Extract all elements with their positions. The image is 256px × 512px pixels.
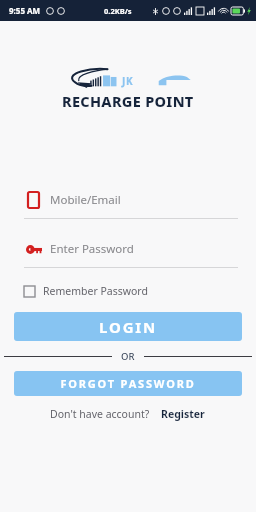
staticText: LOGIN <box>99 317 157 337</box>
staticText: 9:55 AM <box>9 5 41 16</box>
staticText: Remember Password <box>43 284 148 298</box>
staticText: Mobile/Email <box>50 192 121 208</box>
staticText: Enter Password <box>50 241 134 257</box>
button[interactable]: Remember Password <box>0 280 256 302</box>
button[interactable]: Register <box>159 405 207 423</box>
button[interactable]: Mobile/Email <box>0 189 256 219</box>
button[interactable]: Enter Password <box>0 238 256 268</box>
staticText: FORGOT PASSWORD <box>60 376 196 391</box>
staticText: OR <box>121 350 135 363</box>
button[interactable]: FORGOT PASSWORD <box>14 371 242 396</box>
staticText: 0.2KB/s <box>104 6 132 16</box>
staticText: JK <box>122 74 134 88</box>
staticText: Register <box>161 407 205 421</box>
staticText: RECHARGE POINT <box>62 91 194 111</box>
button[interactable]: LOGIN <box>14 312 242 341</box>
staticText: Don't have account? <box>50 407 150 421</box>
